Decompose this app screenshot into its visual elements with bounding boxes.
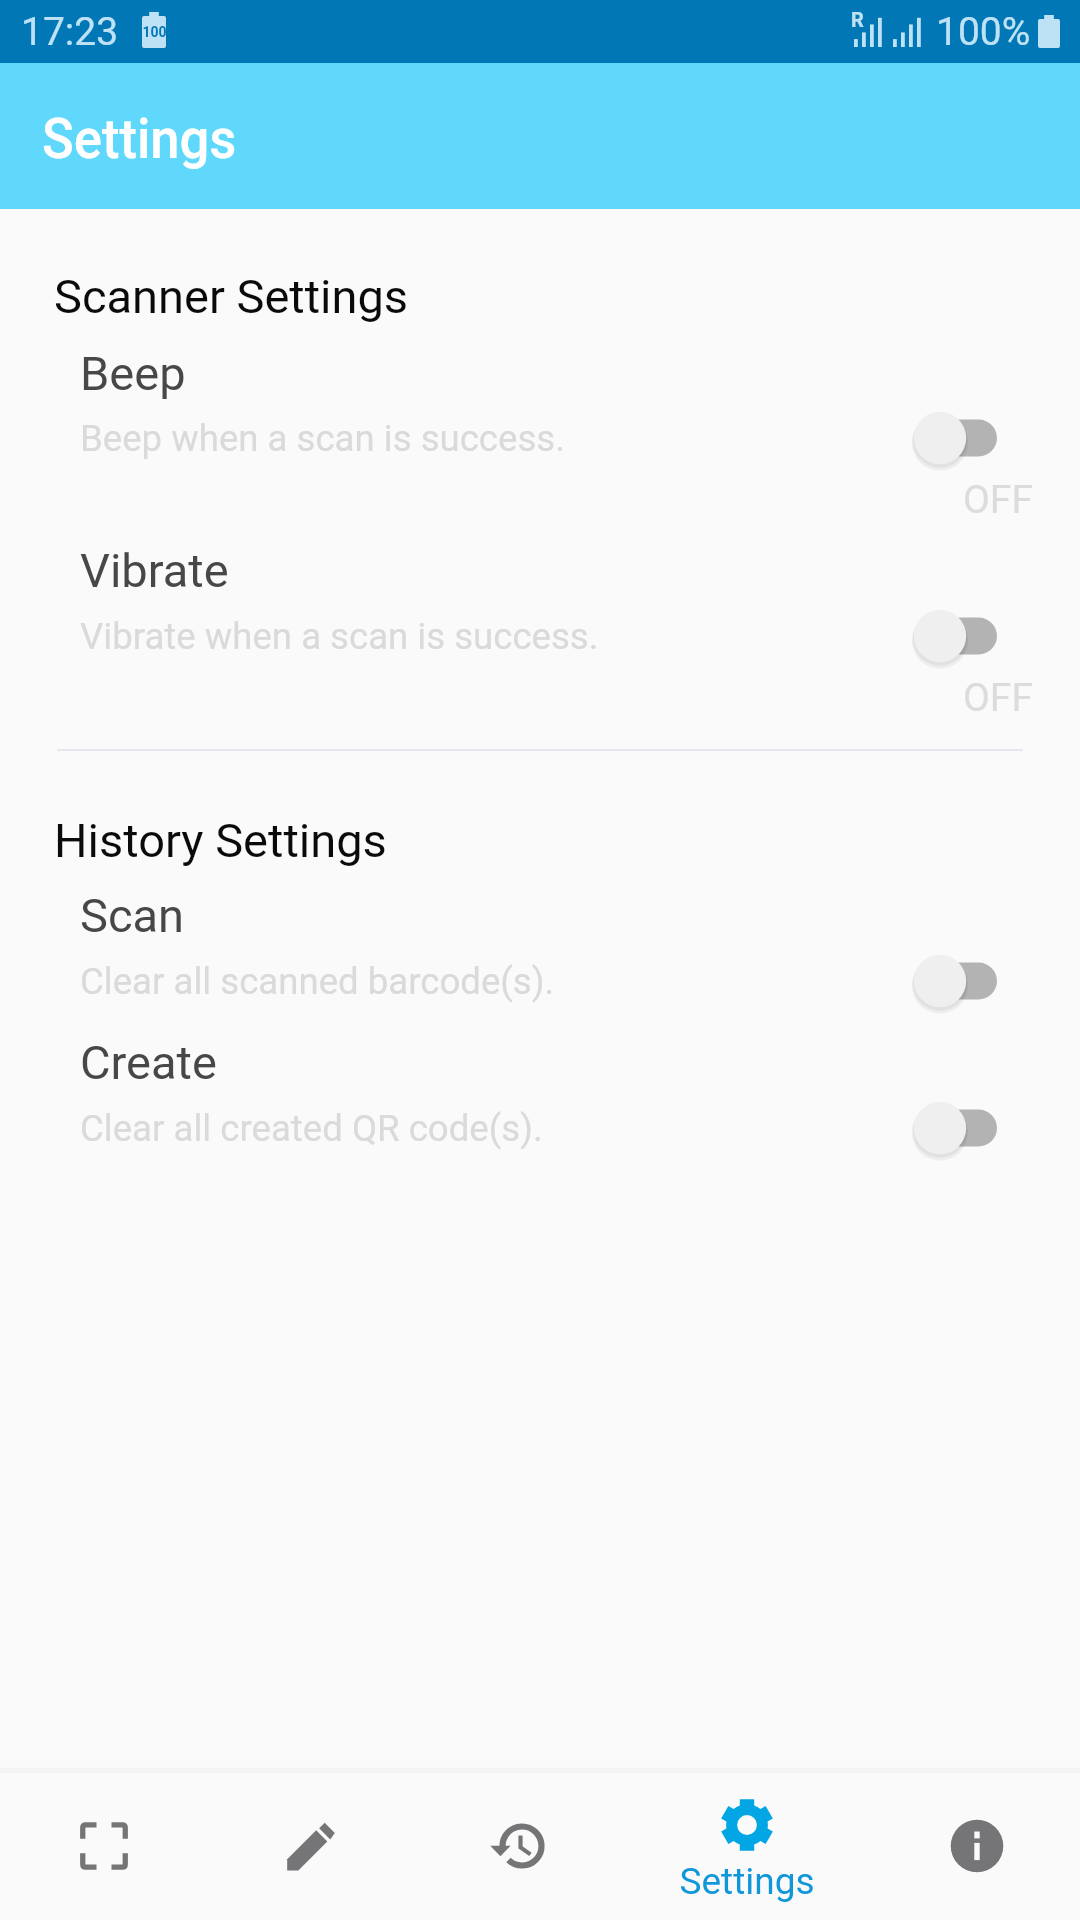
- staticText: Vibrate: [80, 543, 229, 598]
- staticText: OFF: [963, 477, 1033, 523]
- button[interactable]: Create: [208, 1773, 416, 1920]
- staticText: R: [851, 8, 864, 31]
- staticText: 100%: [936, 9, 1031, 55]
- button[interactable]: Scan: [0, 868, 1080, 1020]
- staticText: Settings: [622, 1860, 872, 1903]
- staticText: Beep: [80, 346, 186, 401]
- staticText: 17:23: [21, 9, 119, 55]
- button[interactable]: Create: [0, 1015, 1080, 1167]
- staticText: Create: [80, 1035, 217, 1090]
- button[interactable]: Create switch, off: [901, 1094, 997, 1162]
- staticText: Clear all created QR code(s).: [80, 1107, 543, 1150]
- button[interactable]: History Settings: [54, 813, 387, 868]
- staticText: Scan: [80, 888, 185, 943]
- staticText: Beep when a scan is success.: [80, 417, 565, 460]
- button[interactable]: Beep switch, off: [901, 404, 997, 472]
- staticText: 100: [142, 24, 166, 40]
- button[interactable]: Settings: [623, 1773, 873, 1920]
- staticText: Clear all scanned barcode(s).: [80, 960, 555, 1003]
- button[interactable]: Vibrate: [0, 523, 1080, 723]
- button[interactable]: Info: [873, 1773, 1080, 1920]
- button[interactable]: Vibrate switch, off: [901, 602, 997, 670]
- button[interactable]: Scan: [0, 1773, 208, 1920]
- button[interactable]: Scanner Settings: [54, 269, 409, 324]
- staticText: OFF: [963, 675, 1033, 721]
- button[interactable]: Beep: [0, 326, 1080, 525]
- button[interactable]: History: [415, 1773, 623, 1920]
- staticText: Vibrate when a scan is success.: [80, 615, 599, 658]
- staticText: Settings: [42, 106, 237, 172]
- button[interactable]: Scan switch, off: [901, 947, 997, 1015]
